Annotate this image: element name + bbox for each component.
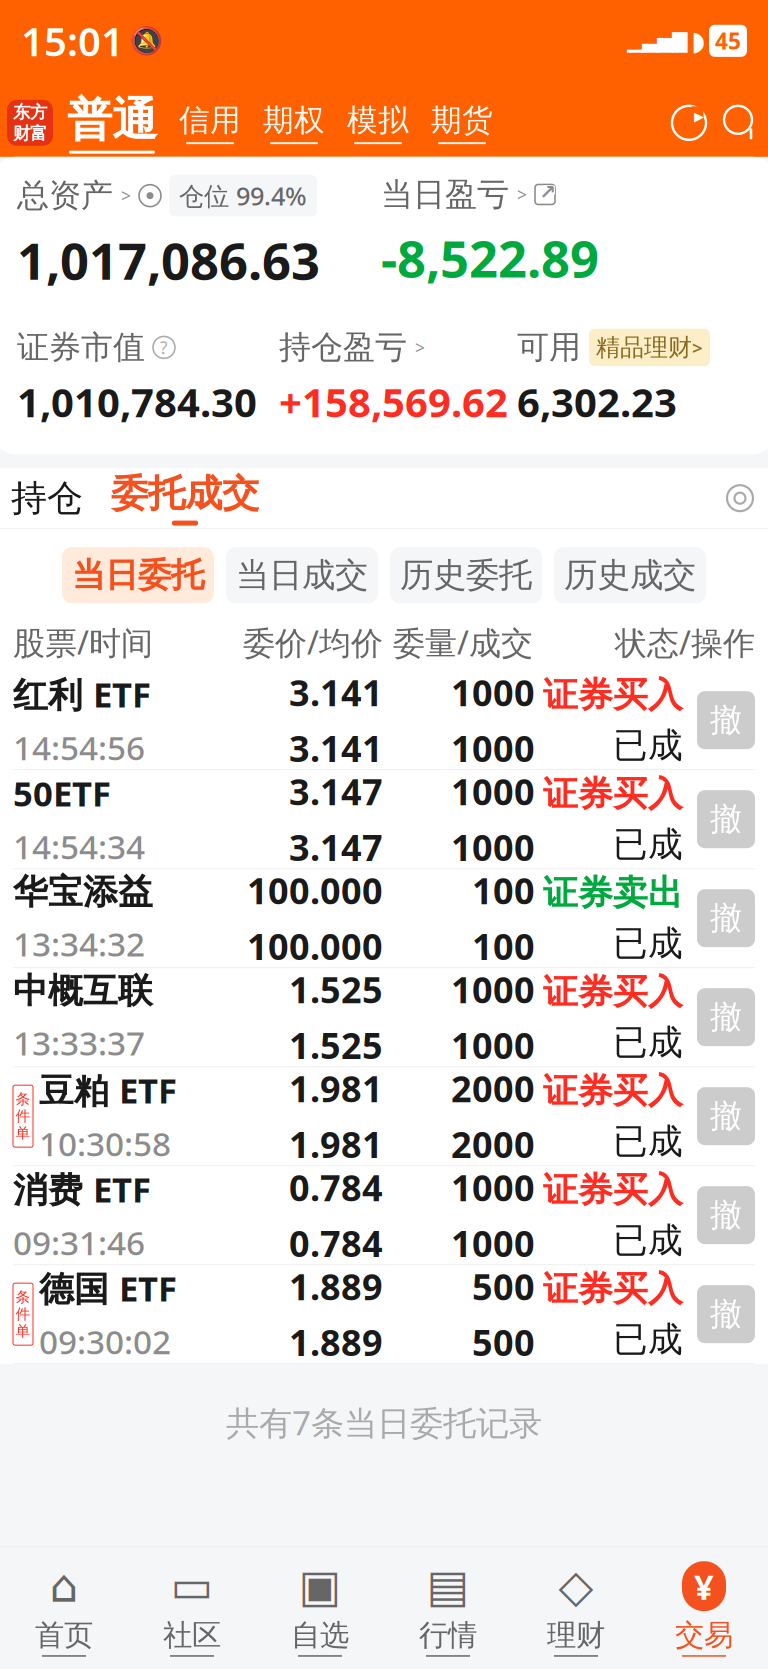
staticText: 件 <box>15 1107 30 1125</box>
button[interactable]: ▭ <box>128 1561 256 1657</box>
button[interactable]: 隐藏金额 <box>139 185 161 207</box>
staticText: 已成 <box>613 1219 683 1262</box>
staticText: 撤 <box>710 997 742 1037</box>
staticText: 1.981 <box>289 1120 383 1168</box>
button[interactable]: ▤ <box>384 1561 512 1657</box>
staticText: 100 <box>472 866 535 914</box>
staticText: 10:30:58 <box>39 1121 171 1165</box>
staticText: 理财 <box>547 1617 605 1653</box>
staticText: 东方 <box>13 101 47 123</box>
staticText: 历史委托 <box>400 555 532 596</box>
staticText: ◇ <box>558 1560 593 1612</box>
staticText: 1.889 <box>289 1318 383 1366</box>
button[interactable]: 模拟 <box>325 101 409 144</box>
button[interactable]: 普通 <box>67 92 157 154</box>
staticText: 期权 <box>263 101 325 139</box>
staticText: ▸ <box>694 104 704 127</box>
button[interactable]: 中概互联 <box>0 968 768 1067</box>
staticText: 证券买入 <box>543 1169 683 1211</box>
staticText: 单 <box>15 1124 30 1142</box>
button[interactable]: 刷新 <box>669 103 709 143</box>
button[interactable]: 委托成交 <box>83 468 259 528</box>
staticText: > <box>415 336 425 359</box>
staticText: 1000 <box>451 1163 535 1211</box>
staticText: 1000 <box>451 668 535 716</box>
button[interactable]: 条 <box>0 1265 768 1364</box>
staticText: 1000 <box>451 965 535 1013</box>
staticText: 普通 <box>67 92 157 148</box>
button[interactable]: 信用 <box>157 101 241 144</box>
staticText: 状态/操作 <box>615 621 755 663</box>
staticText: 证券买入 <box>543 1268 683 1310</box>
staticText: 证券买入 <box>543 674 683 716</box>
button[interactable]: 搜索 <box>721 103 761 143</box>
staticText: 委价/均价 <box>243 621 383 663</box>
button[interactable]: 期货 <box>409 101 493 144</box>
staticText: 100.000 <box>247 922 383 970</box>
staticText: 持仓盈亏 <box>279 328 407 367</box>
staticText: 证券买入 <box>543 773 683 815</box>
staticText: ▣ <box>298 1560 341 1612</box>
staticText: 委量/成交 <box>393 621 533 663</box>
staticText: 当日盈亏 <box>381 175 509 214</box>
button[interactable]: ▣ <box>256 1561 384 1657</box>
button[interactable]: 历史成交 <box>554 547 706 603</box>
staticText: ⌂ <box>49 1560 78 1612</box>
staticText: 可用 <box>517 328 581 367</box>
button[interactable]: 历史委托 <box>390 547 542 603</box>
staticText: 行情 <box>419 1617 477 1653</box>
button[interactable]: 说明 <box>153 336 175 358</box>
staticText: 14:54:56 <box>13 725 145 769</box>
staticText: 撤 <box>710 1195 742 1235</box>
staticText: 13:33:37 <box>13 1020 145 1065</box>
staticText: ↗ <box>539 181 556 203</box>
staticText: 首页 <box>35 1617 93 1653</box>
button[interactable]: 红利 ETF <box>0 671 768 770</box>
staticText: 1000 <box>451 823 535 871</box>
staticText: 6,302.23 <box>517 375 677 428</box>
button[interactable]: 华宝添益 <box>0 869 768 968</box>
staticText: 已成 <box>613 1318 683 1361</box>
button[interactable]: 条 <box>0 1067 768 1166</box>
button[interactable]: 消费 ETF <box>0 1166 768 1265</box>
staticText: 信用 <box>179 101 241 139</box>
staticText: 消费 ETF <box>13 1166 151 1212</box>
staticText: 1000 <box>451 1021 535 1069</box>
staticText: 中概互联 <box>13 970 153 1012</box>
staticText: 撤 <box>710 700 742 740</box>
staticText: 1000 <box>451 767 535 815</box>
staticText: 自选 <box>291 1617 349 1653</box>
button[interactable]: 当日委托 <box>62 547 214 603</box>
staticText: 单 <box>15 1322 30 1340</box>
staticText: 1000 <box>451 724 535 772</box>
staticText: 华宝添益 <box>13 871 153 913</box>
button[interactable]: 期权 <box>241 101 325 144</box>
staticText: > <box>121 184 131 207</box>
staticText: > <box>692 335 703 360</box>
staticText: 0.784 <box>289 1163 383 1211</box>
staticText: 件 <box>15 1305 30 1323</box>
staticText: 共有7条当日委托记录 <box>226 1400 542 1444</box>
staticText: 100.000 <box>247 866 383 914</box>
button[interactable]: 当日成交 <box>226 547 378 603</box>
staticText: 2000 <box>451 1120 535 1168</box>
staticText: 2000 <box>451 1064 535 1112</box>
button[interactable]: 设置 <box>723 481 757 515</box>
button[interactable]: 持仓 <box>11 468 83 528</box>
button[interactable]: 精品理财 <box>589 329 710 366</box>
button[interactable]: ⌂ <box>0 1561 128 1657</box>
button[interactable]: ◇ <box>512 1561 640 1657</box>
staticText: 1.889 <box>289 1262 383 1310</box>
staticText: 条 <box>15 1090 30 1108</box>
staticText: 3.141 <box>289 668 383 716</box>
staticText: 1.525 <box>289 1021 383 1069</box>
staticText: 历史成交 <box>564 555 696 596</box>
staticText: -8,522.89 <box>381 224 599 291</box>
staticText: 仓位 99.4% <box>179 179 307 212</box>
button[interactable]: 50ETF <box>0 770 768 869</box>
button[interactable]: ¥ <box>640 1561 768 1657</box>
staticText: 条 <box>15 1288 30 1306</box>
button[interactable]: 分享 <box>535 184 555 204</box>
staticText: ◗ <box>691 26 705 56</box>
staticText: 500 <box>472 1318 535 1366</box>
